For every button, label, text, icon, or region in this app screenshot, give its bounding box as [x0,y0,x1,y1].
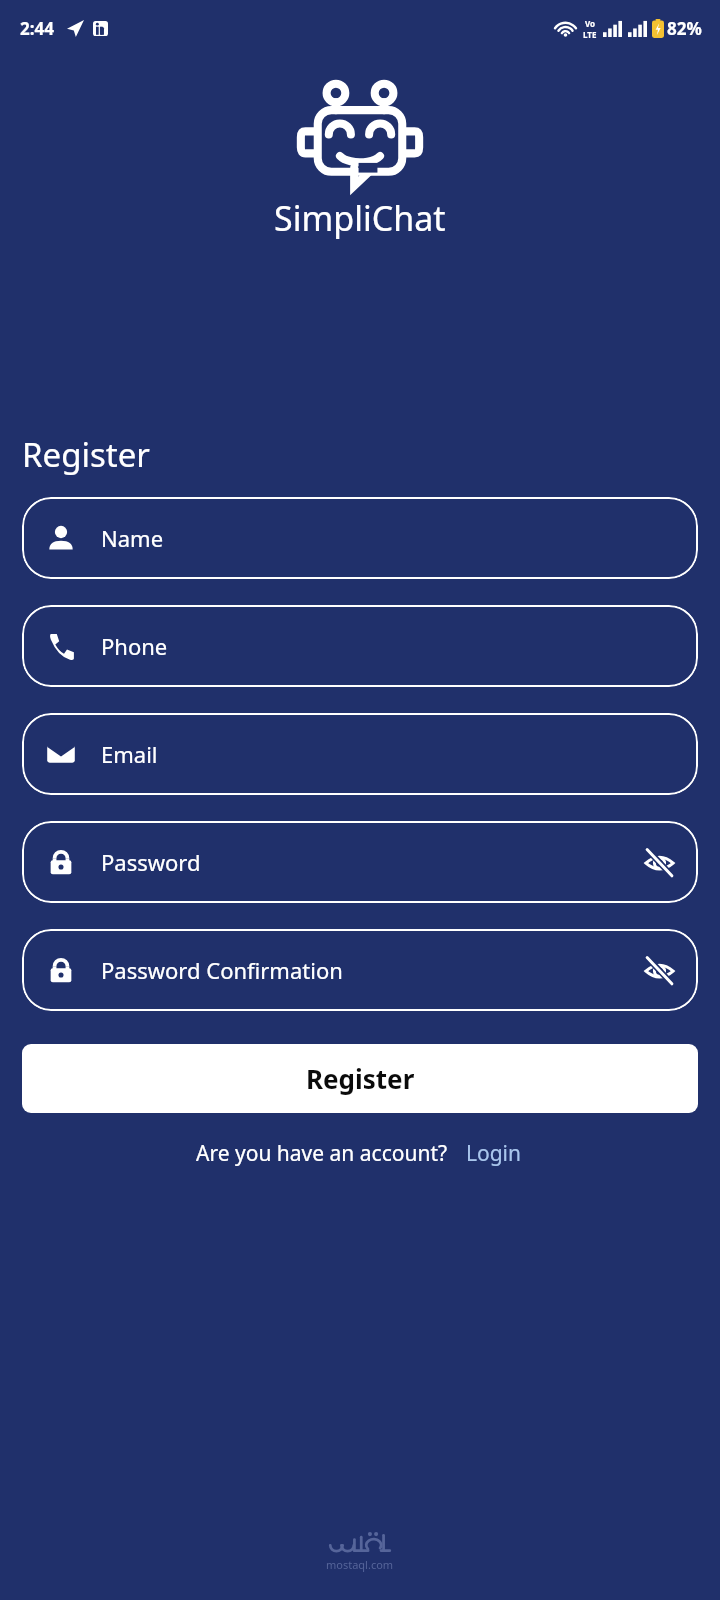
staticText: Vo [585,18,596,29]
staticText: Register [22,432,150,477]
staticText: 2:44 [20,17,54,40]
button[interactable]: Show password [636,839,682,885]
staticText: Password [101,847,201,877]
staticText: Name [101,523,164,553]
staticText: Are you have an account? [196,1139,448,1168]
button[interactable]: Register [22,1044,698,1113]
button[interactable]: Show password [636,947,682,993]
staticText: 82% [667,17,702,40]
staticText: Phone [101,631,168,661]
staticText: Register [306,1061,415,1096]
staticText: Email [101,739,158,769]
staticText: LTE [583,29,597,40]
button[interactable]: Phone [22,605,698,687]
button[interactable]: Email [22,713,698,795]
staticText: Login [466,1139,522,1168]
button[interactable]: Password [22,821,698,903]
button[interactable]: Login [464,1137,524,1170]
button[interactable]: Name [22,497,698,579]
staticText: Password Confirmation [101,955,343,985]
staticText: mostaql.com [326,1557,394,1572]
staticText: SimpliChat [274,195,446,241]
button[interactable]: Password Confirmation [22,929,698,1011]
